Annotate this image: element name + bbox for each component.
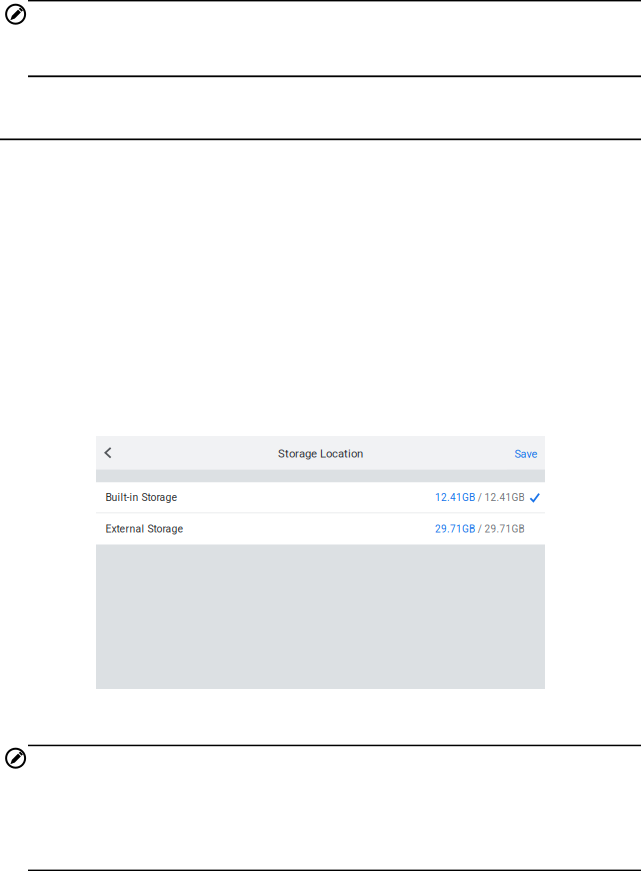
staticText: Built-in Storage bbox=[105, 491, 177, 504]
staticText: Storage Location bbox=[278, 447, 363, 460]
button[interactable]: Built-in Storage bbox=[96, 482, 545, 512]
staticText: 29.71GB bbox=[435, 523, 475, 535]
button[interactable]: External Storage bbox=[96, 513, 545, 544]
button[interactable]: Save bbox=[507, 436, 545, 469]
button[interactable]: Back bbox=[96, 436, 120, 469]
staticText: Save bbox=[514, 448, 537, 460]
staticText: External Storage bbox=[105, 523, 183, 535]
staticText: 12.41GB bbox=[484, 492, 524, 503]
staticText: 29.71GB bbox=[484, 523, 524, 535]
staticText: / bbox=[478, 523, 482, 535]
staticText: / bbox=[478, 492, 482, 503]
staticText: 12.41GB bbox=[435, 492, 475, 503]
